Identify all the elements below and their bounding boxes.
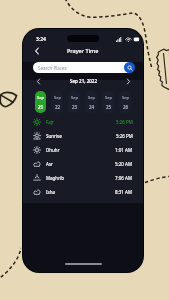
staticText: 1:01 AM — [115, 147, 133, 153]
staticText: Maghrib — [46, 175, 64, 181]
button[interactable]: Search — [124, 62, 135, 73]
staticText: 5:26 PM — [116, 119, 133, 125]
staticText: Sep — [122, 95, 129, 100]
staticText: Sep — [37, 95, 44, 100]
staticText: 5:20 AM — [115, 161, 133, 167]
staticText: Prayer Time — [67, 47, 99, 54]
staticText: Isha — [46, 189, 55, 195]
staticText: 23 — [72, 104, 78, 110]
button[interactable]: Fajr — [33, 115, 133, 129]
staticText: 25 — [106, 104, 112, 110]
button[interactable]: Sunrise — [33, 129, 133, 143]
staticText: Sep — [71, 95, 78, 100]
staticText: 7:06 AM — [115, 175, 133, 181]
staticText: Sep — [88, 95, 95, 100]
button[interactable]: Dhuhr — [33, 143, 133, 157]
staticText: Sep 21, 2022 — [70, 78, 97, 84]
button[interactable]: Next day — [123, 76, 133, 86]
button[interactable]: Sep — [119, 91, 131, 113]
staticText: Sunrise — [46, 133, 62, 139]
staticText: 21 — [38, 104, 44, 110]
staticText: Search Places — [38, 65, 67, 71]
button[interactable]: Asr — [33, 157, 133, 171]
staticText: Fajr — [46, 119, 54, 125]
button[interactable]: Sep — [51, 91, 63, 113]
button[interactable]: Sep — [85, 91, 97, 113]
staticText: Sep — [105, 95, 112, 100]
button[interactable]: Previous day — [33, 76, 43, 86]
button[interactable]: Sep — [35, 91, 46, 113]
button[interactable]: Sep — [102, 91, 114, 113]
button[interactable]: Back — [31, 45, 42, 56]
button[interactable]: Isha — [33, 185, 133, 199]
staticText: Asr — [46, 161, 53, 167]
staticText: 5:26 PM — [116, 133, 133, 139]
staticText: Sep — [54, 95, 61, 100]
staticText: 26 — [123, 104, 129, 110]
staticText: 22 — [55, 104, 61, 110]
button[interactable]: Sep — [68, 91, 80, 113]
button[interactable]: Maghrib — [33, 171, 133, 185]
button[interactable]: Search Places — [33, 62, 133, 73]
staticText: Dhuhr — [46, 147, 60, 153]
staticText: 24 — [89, 104, 95, 110]
staticText: 3:24 — [36, 36, 46, 43]
staticText: 8:31 AM — [115, 189, 133, 195]
